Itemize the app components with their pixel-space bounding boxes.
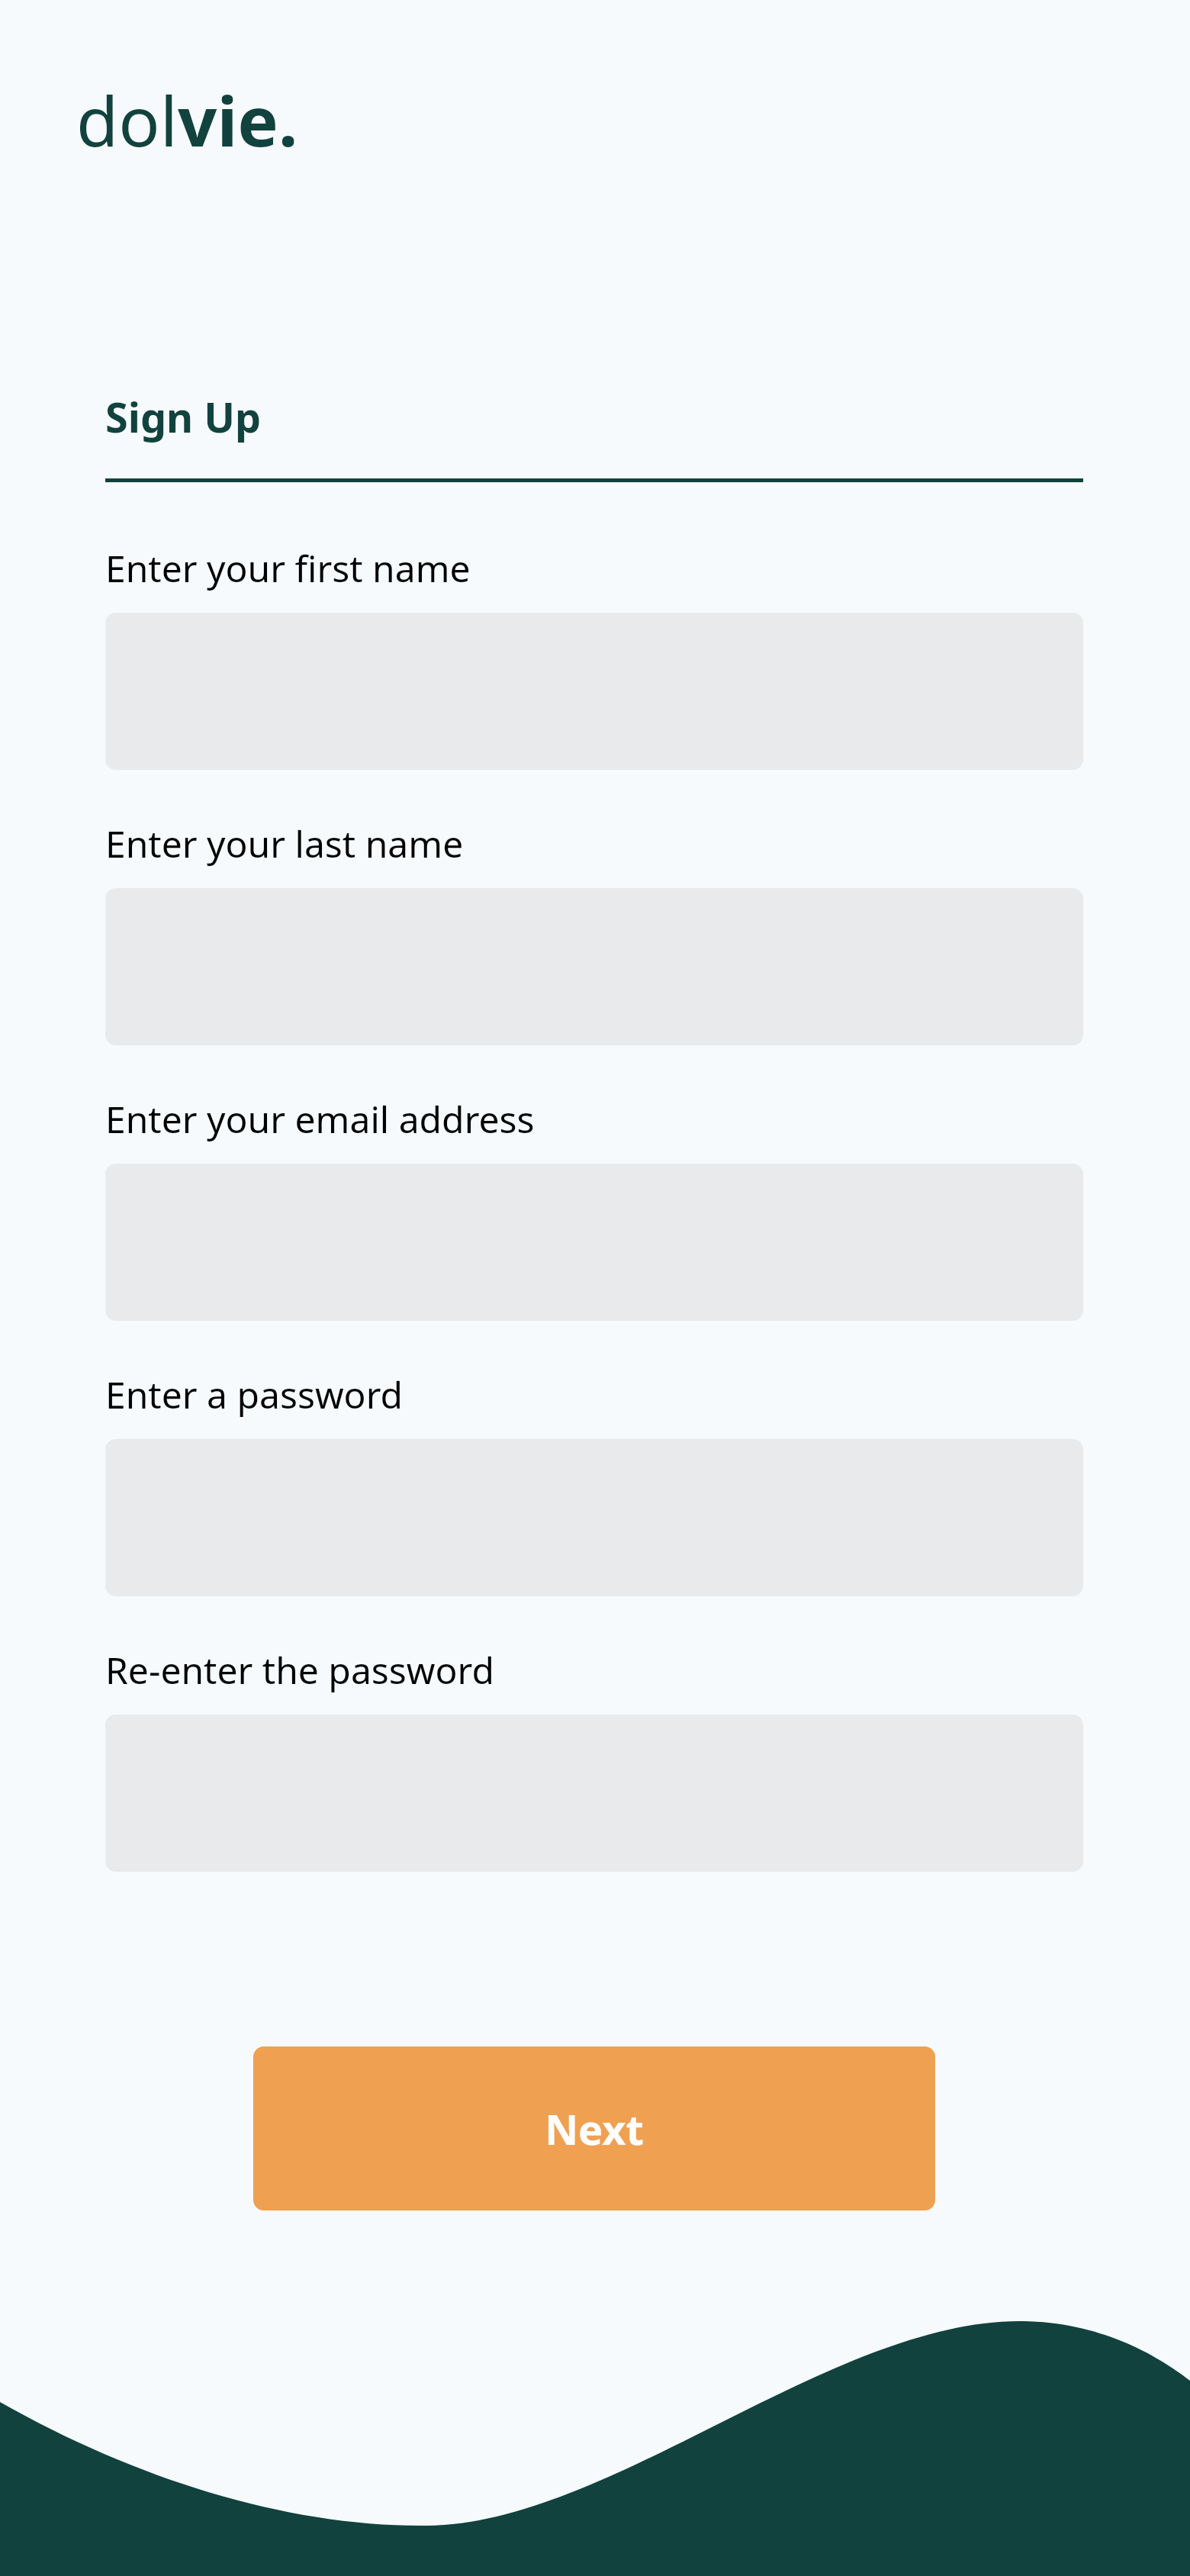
staticText: Enter your first name — [105, 543, 471, 593]
staticText: Enter your email address — [105, 1094, 535, 1144]
staticText: Re-enter the password — [105, 1645, 494, 1695]
staticText: Sign Up — [105, 388, 262, 445]
staticText: Enter a password — [105, 1370, 404, 1419]
staticText: Next — [545, 2101, 644, 2157]
staticText: dolvie. — [76, 73, 298, 167]
staticText: Enter your last name — [105, 819, 464, 868]
button[interactable]: Next — [253, 2046, 935, 2211]
